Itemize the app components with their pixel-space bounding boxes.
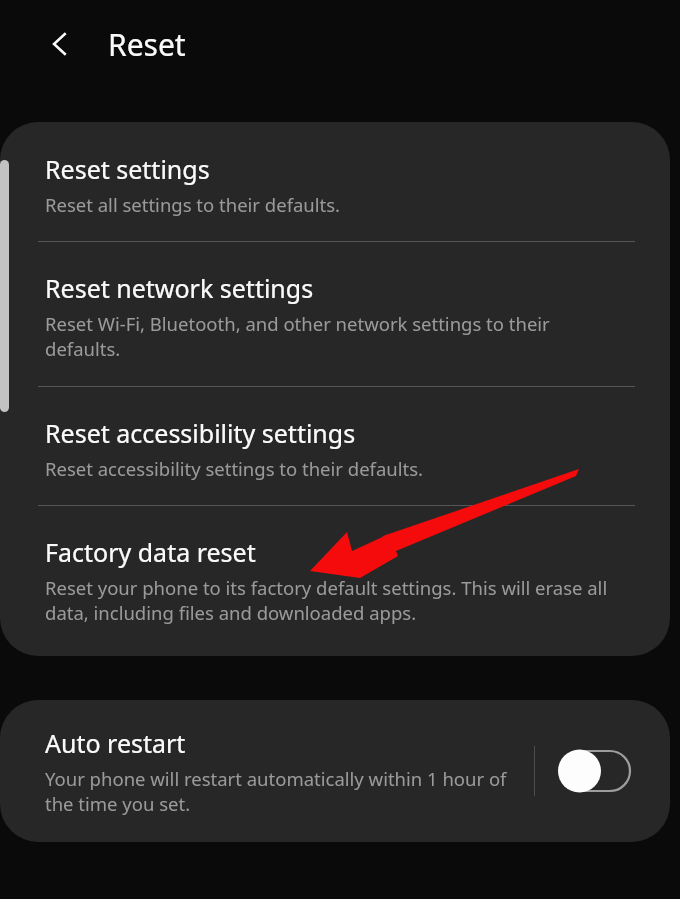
button[interactable]: Reset network settings <box>0 242 670 386</box>
button[interactable]: Factory data reset <box>0 506 670 656</box>
staticText: Auto restart <box>45 726 186 760</box>
button[interactable]: Auto restart toggle, off <box>559 749 631 793</box>
staticText: Reset Wi-Fi, Bluetooth, and other networ… <box>45 311 610 362</box>
button[interactable]: Reset accessibility settings <box>0 387 670 505</box>
staticText: Your phone will restart automatically wi… <box>45 766 522 817</box>
button[interactable]: Back <box>34 18 86 70</box>
staticText: Factory data reset <box>45 535 256 569</box>
button[interactable]: Auto restart <box>0 700 670 842</box>
staticText: Reset accessibility settings <box>45 416 356 450</box>
staticText: Reset accessibility settings to their de… <box>45 456 424 481</box>
staticText: Reset network settings <box>45 271 314 305</box>
staticText: Reset settings <box>45 152 210 186</box>
staticText: Reset your phone to its factory default … <box>45 575 615 626</box>
button[interactable]: Reset settings <box>0 122 670 241</box>
staticText: Reset <box>108 24 186 65</box>
staticText: Reset all settings to their defaults. <box>45 192 341 217</box>
